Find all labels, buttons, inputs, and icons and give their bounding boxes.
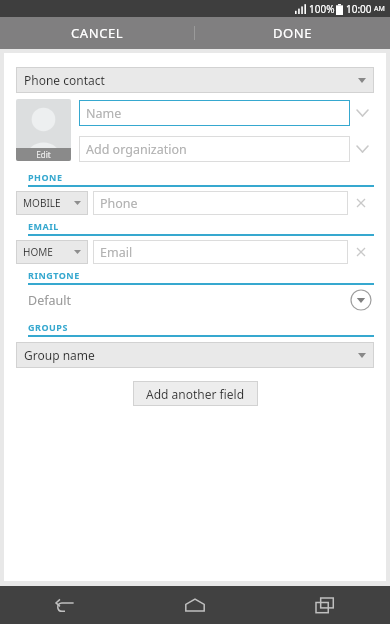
staticText: DONE (273, 24, 313, 42)
staticText: Name (86, 105, 122, 122)
other: Choose ringtone (350, 289, 372, 311)
button[interactable]: Edit photo (16, 99, 71, 161)
staticText: Phone (100, 195, 138, 212)
staticText: AM (374, 4, 385, 14)
button[interactable]: Remove Phone (348, 191, 374, 215)
button[interactable]: DONE (195, 17, 390, 49)
button[interactable]: HOME (16, 240, 88, 264)
button[interactable]: Recent apps (260, 586, 390, 624)
staticText: HOME (23, 245, 53, 259)
staticText: Edit (36, 149, 51, 160)
staticText: CANCEL (71, 24, 124, 42)
staticText: Group name (24, 347, 95, 363)
staticText: PHONE (28, 171, 63, 183)
staticText: GROUPS (28, 321, 68, 333)
button[interactable]: Add organization (79, 136, 350, 162)
button[interactable]: Phone (93, 191, 348, 215)
staticText: MOBILE (23, 196, 61, 210)
staticText: Phone contact (24, 72, 105, 88)
button[interactable]: Remove Email (348, 240, 374, 264)
button[interactable]: Default (16, 285, 374, 315)
staticText: RINGTONE (28, 269, 80, 281)
staticText: Add organization (86, 141, 187, 158)
button[interactable]: Email (93, 240, 348, 264)
button[interactable]: CANCEL (0, 17, 194, 49)
button[interactable]: Name (79, 100, 350, 126)
button[interactable]: MOBILE (16, 191, 88, 215)
button[interactable]: Phone contact (16, 67, 374, 93)
staticText: Add another field (146, 386, 245, 402)
staticText: Default (28, 292, 71, 309)
button[interactable]: Back (0, 586, 130, 624)
button[interactable]: Expand organization fields (350, 136, 374, 162)
staticText: 10:00 (346, 2, 372, 16)
button[interactable]: Expand name fields (350, 100, 374, 126)
staticText: 100% (309, 2, 335, 16)
staticText: EMAIL (28, 220, 59, 232)
button[interactable]: Group name (16, 342, 374, 368)
button[interactable]: Add another field (133, 381, 258, 406)
button[interactable]: Home (130, 586, 260, 624)
staticText: Email (100, 244, 133, 261)
